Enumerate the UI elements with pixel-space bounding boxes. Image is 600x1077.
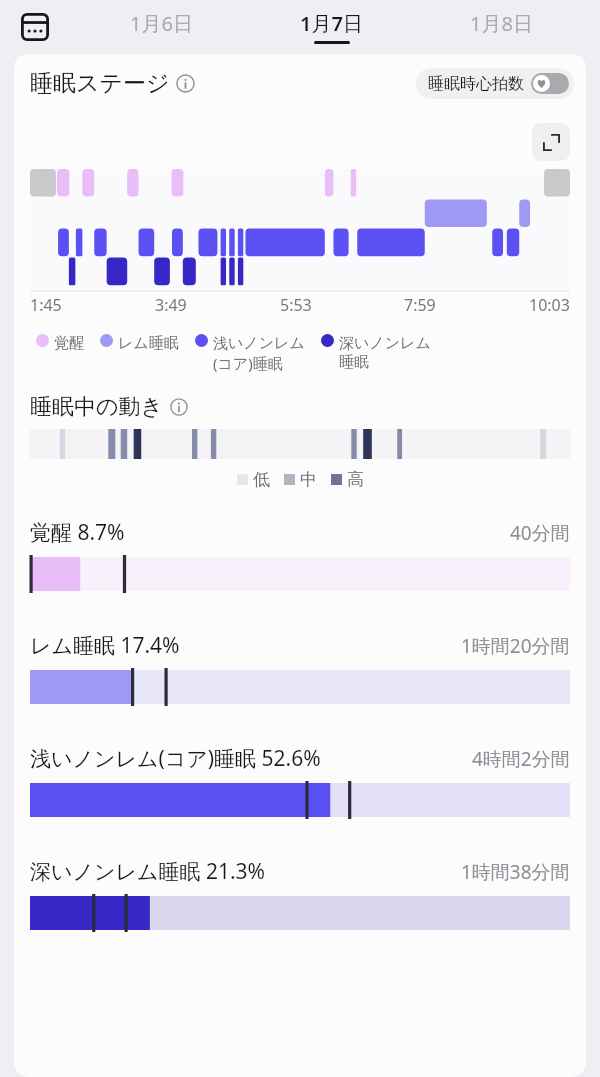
staticText: 深いノンレム睡眠 21.3%: [30, 857, 266, 886]
button[interactable]: 覚醒 8.7%: [14, 518, 586, 591]
staticText: 低: [253, 469, 270, 490]
staticText: 浅いノンレム: [213, 334, 305, 353]
staticText: 中: [300, 469, 317, 490]
staticText: 1月6日: [130, 10, 193, 37]
staticText: 深いノンレム: [339, 334, 431, 353]
staticText: 5:53: [280, 294, 312, 316]
button[interactable]: Calendar: [14, 6, 56, 48]
button[interactable]: Expand chart: [532, 123, 570, 161]
staticText: 覚醒 8.7%: [30, 518, 125, 547]
button[interactable]: レム睡眠 17.4%: [14, 631, 586, 704]
staticText: 1月7日: [300, 10, 363, 37]
staticText: 40分間: [510, 520, 570, 546]
staticText: 3:49: [155, 294, 187, 316]
staticText: 1時間38分間: [461, 859, 570, 885]
staticText: 1:45: [30, 294, 62, 316]
staticText: (コア)睡眠: [213, 353, 283, 373]
staticText: 睡眠ステージ: [30, 69, 170, 98]
button[interactable]: 深いノンレム睡眠 21.3%: [14, 857, 586, 930]
staticText: 10:03: [529, 294, 570, 316]
staticText: 睡眠時心拍数: [428, 74, 524, 94]
staticText: 睡眠: [339, 353, 369, 372]
staticText: レム睡眠 17.4%: [30, 631, 180, 660]
staticText: 浅いノンレム(コア)睡眠 52.6%: [30, 744, 321, 773]
staticText: 1時間20分間: [461, 633, 570, 659]
button[interactable]: 睡眠時心拍数: [416, 68, 574, 99]
button[interactable]: 1月7日: [246, 0, 416, 54]
staticText: 1月8日: [470, 10, 533, 37]
staticText: 高: [347, 469, 364, 490]
staticText: 4時間2分間: [472, 746, 570, 772]
staticText: レム睡眠: [118, 334, 179, 353]
button[interactable]: 1月6日: [76, 0, 246, 54]
button[interactable]: 浅いノンレム(コア)睡眠 52.6%: [14, 744, 586, 817]
button[interactable]: 1月8日: [416, 0, 586, 54]
staticText: 覚醒: [54, 334, 84, 353]
staticText: 睡眠中の動き: [30, 393, 164, 421]
staticText: 7:59: [404, 294, 436, 316]
